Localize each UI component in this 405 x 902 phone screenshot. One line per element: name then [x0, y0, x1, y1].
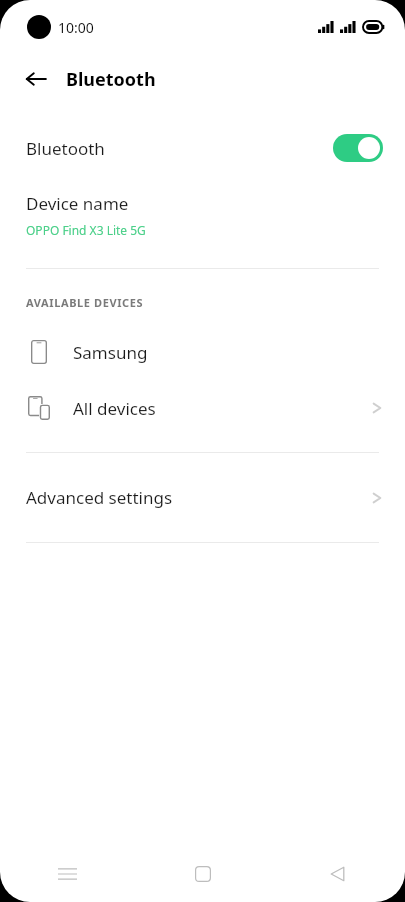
staticText: OPPO Find X3 Lite 5G [26, 222, 146, 238]
staticText: AVAILABLE DEVICES [26, 295, 144, 310]
button[interactable]: Back [14, 57, 58, 101]
staticText: All devices [73, 397, 156, 420]
button[interactable]: Bluetooth [0, 126, 405, 170]
button[interactable]: Bluetooth toggle [333, 134, 383, 162]
staticText: Advanced settings [26, 486, 173, 509]
button[interactable]: Samsung [0, 330, 405, 374]
button[interactable]: Home [135, 845, 270, 902]
staticText: Samsung [73, 341, 148, 364]
staticText: Device name [26, 192, 129, 215]
staticText: Bluetooth [66, 67, 156, 92]
button[interactable]: Recents [0, 845, 135, 902]
staticText: Bluetooth [26, 137, 105, 160]
button[interactable]: Advanced settings [0, 453, 405, 542]
button[interactable]: All devices [0, 386, 405, 430]
staticText: 10:00 [58, 18, 94, 37]
button[interactable]: Back [270, 845, 405, 902]
button[interactable]: Device name [0, 190, 405, 240]
